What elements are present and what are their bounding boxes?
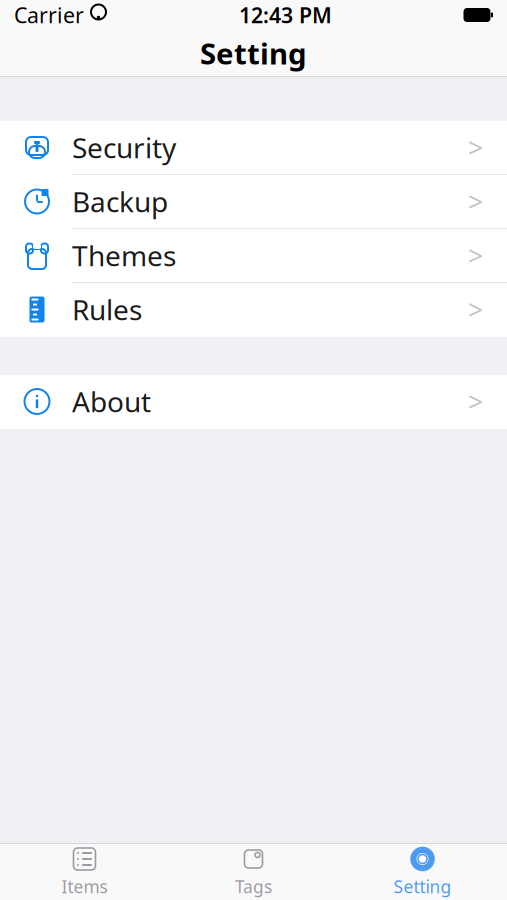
button[interactable]: Setting	[338, 844, 507, 900]
staticText: Rules	[72, 291, 142, 328]
button[interactable]: Security	[0, 121, 507, 175]
button[interactable]: About	[0, 375, 507, 429]
staticText: >	[468, 292, 483, 327]
staticText: >	[468, 130, 483, 165]
button[interactable]: Backup	[0, 175, 507, 229]
button[interactable]: Items	[0, 844, 169, 900]
staticText: Backup	[72, 183, 168, 220]
staticText: Items	[61, 875, 107, 898]
staticText: Tags	[235, 875, 272, 898]
staticText: Setting	[200, 33, 307, 72]
button[interactable]: Tags	[169, 844, 338, 900]
staticText: Security	[72, 129, 176, 166]
staticText: About	[72, 383, 151, 420]
staticText: >	[468, 384, 483, 419]
staticText: Setting	[393, 875, 451, 898]
staticText: >	[468, 184, 483, 219]
staticText: >	[468, 238, 483, 273]
button[interactable]: Rules	[0, 283, 507, 337]
staticText: 12:43 PM	[239, 1, 332, 29]
staticText: Themes	[72, 237, 176, 274]
button[interactable]: Themes	[0, 229, 507, 283]
staticText: Carrier	[14, 1, 84, 29]
